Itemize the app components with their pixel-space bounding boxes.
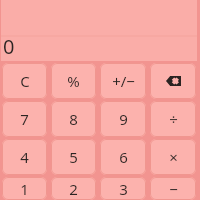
staticText: 3: [119, 179, 128, 199]
staticText: ×: [169, 147, 178, 167]
button[interactable]: −: [150, 177, 196, 200]
button[interactable]: 5: [51, 139, 96, 175]
button[interactable]: ÷: [150, 101, 196, 137]
button[interactable]: C: [2, 63, 47, 99]
staticText: ÷: [169, 109, 178, 129]
staticText: 1: [20, 179, 29, 199]
staticText: 9: [119, 109, 128, 129]
button[interactable]: 7: [2, 101, 47, 137]
button[interactable]: 2: [51, 177, 96, 200]
button[interactable]: 3: [100, 177, 146, 200]
button[interactable]: 6: [100, 139, 146, 175]
staticText: C: [20, 71, 30, 91]
button[interactable]: 4: [2, 139, 47, 175]
button[interactable]: ×: [150, 139, 196, 175]
staticText: 6: [119, 147, 128, 167]
staticText: 0: [3, 33, 15, 60]
button[interactable]: 1: [2, 177, 47, 200]
staticText: %: [67, 71, 80, 91]
staticText: 7: [20, 109, 29, 129]
staticText: 4: [20, 147, 29, 167]
staticText: 5: [69, 147, 78, 167]
button[interactable]: +/−: [100, 63, 146, 99]
button[interactable]: 9: [100, 101, 146, 137]
button[interactable]: Backspace: [150, 63, 196, 99]
staticText: 2: [69, 179, 78, 199]
button[interactable]: 8: [51, 101, 96, 137]
staticText: +/−: [112, 71, 135, 91]
staticText: 8: [69, 109, 78, 129]
button[interactable]: %: [51, 63, 96, 99]
staticText: −: [169, 179, 178, 199]
